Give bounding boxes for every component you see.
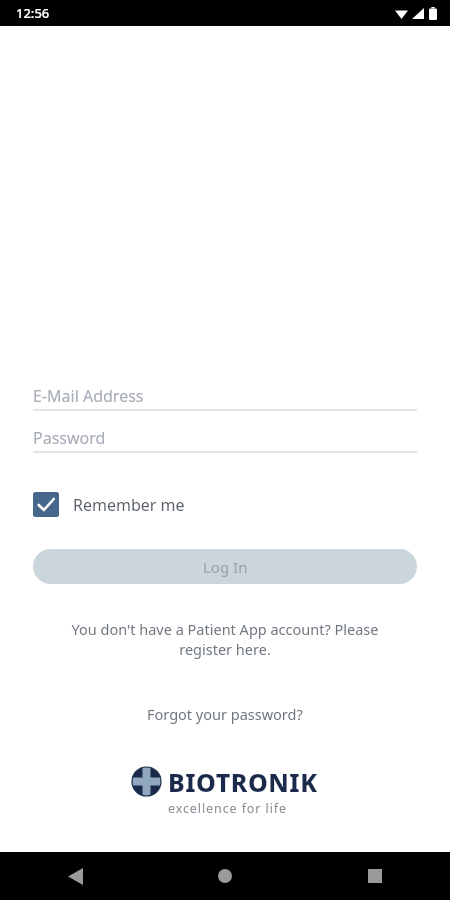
staticText: excellence for life [168,800,287,817]
staticText: 12:56 [16,4,50,22]
button[interactable]: Password [33,425,417,453]
staticText: Password [33,427,106,449]
staticText: Remember me [73,494,185,516]
button[interactable]: Forgot your password? [139,701,311,727]
staticText: BIOTRONIK [168,765,318,799]
button[interactable]: Recent apps [300,852,450,900]
button[interactable]: E-Mail Address [33,383,417,411]
button[interactable]: Back [0,852,150,900]
staticText: E-Mail Address [33,385,144,407]
button[interactable]: Home [150,852,300,900]
button[interactable]: You don't have a Patient App account? Pl… [0,619,450,660]
staticText: Log In [203,557,248,577]
button[interactable]: Log In [33,549,417,584]
staticText: Forgot your password? [147,704,303,724]
button[interactable]: Remember me [33,489,197,520]
staticText: You don't have a Patient App account? Pl… [56,619,394,660]
